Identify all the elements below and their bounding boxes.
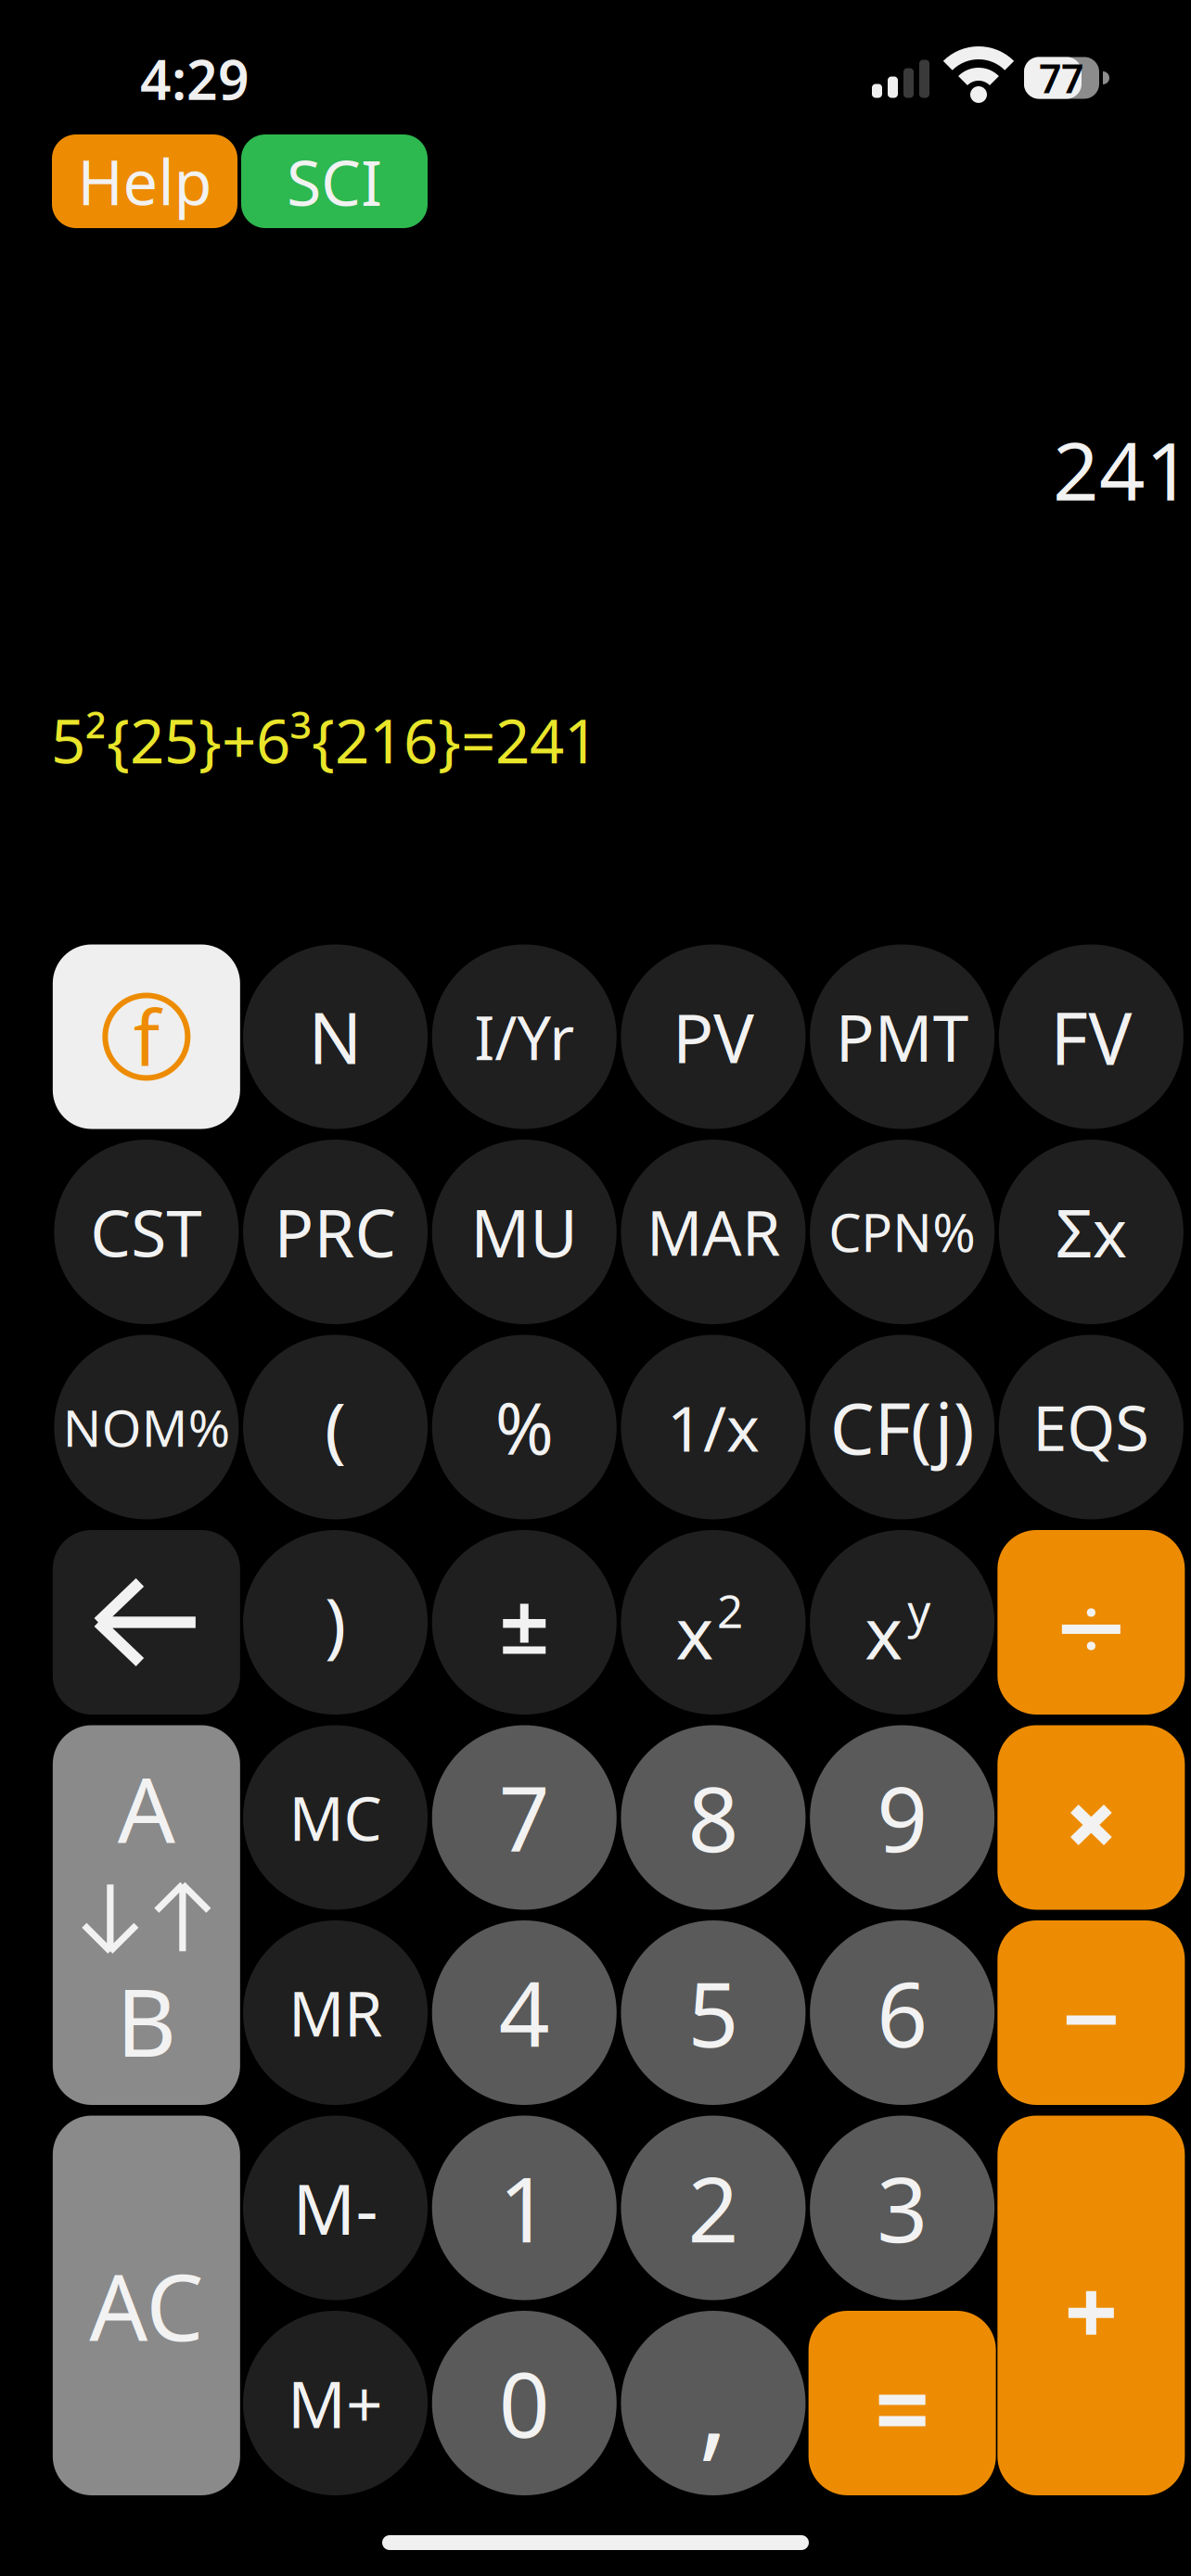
staticText: PV [672,992,754,1082]
button[interactable]: Σx [999,1140,1183,1324]
button[interactable]: M+ [243,2311,428,2495]
button[interactable] [432,1530,617,1715]
button[interactable]: MC [243,1725,428,1910]
staticText: A [118,1748,175,1867]
button[interactable]: CST [54,1140,239,1324]
staticText: 0 [499,2344,550,2462]
button[interactable]: Equals [808,2311,996,2495]
button[interactable]: , [621,2311,806,2495]
staticText: x [865,1584,903,1679]
button[interactable]: 1 [432,2116,617,2300]
staticText: MAR [646,1191,780,1273]
staticText: 4 [499,1954,550,2072]
staticText: B [116,1959,177,2082]
staticText: CF(j) [830,1380,975,1474]
button[interactable]: NOM% [54,1335,239,1519]
button[interactable]: 4 [432,1920,617,2105]
staticText: 4:29 [140,43,250,115]
staticText: f [133,986,159,1088]
staticText: Help [77,140,212,222]
staticText: AC [89,2245,203,2366]
button[interactable]: 6 [810,1920,994,2105]
staticText: 2 [688,2149,739,2267]
staticText: 1 [499,2149,550,2267]
staticText: I/Yr [474,996,574,1077]
button[interactable]: 8 [621,1725,806,1910]
staticText: FV [1050,988,1132,1085]
staticText: 5 [688,1954,739,2072]
staticText: 5²{25}+6³{216}=241 [51,700,598,780]
staticText: MC [289,1777,382,1858]
button[interactable]: EQS [999,1335,1183,1519]
staticText: % [495,1380,554,1474]
button[interactable]: 1/x [621,1335,806,1519]
button[interactable]: FV [999,944,1183,1129]
staticText: y [907,1580,930,1641]
button[interactable]: Help [52,134,237,228]
staticText: x [676,1584,714,1679]
button[interactable]: SCI [241,134,428,228]
button[interactable]: Multiply [997,1725,1185,1910]
button[interactable]: PRC [243,1140,428,1324]
staticText: N [308,990,362,1083]
staticText: ( [325,1380,346,1475]
button[interactable]: M- [243,2116,428,2300]
button[interactable]: Swap A and B [53,1725,240,2105]
staticText: 241 [1053,416,1191,523]
button[interactable]: PMT [810,944,994,1129]
button[interactable]: 5 [621,1920,806,2105]
staticText: 8 [688,1758,739,1877]
button[interactable]: ( [243,1335,428,1519]
button[interactable]: Backspace [53,1530,240,1715]
button[interactable]: 7 [432,1725,617,1910]
button[interactable]: CPN% [810,1140,994,1324]
button[interactable]: MAR [621,1140,806,1324]
staticText: 7 [499,1758,550,1877]
button[interactable]: CF(j) [810,1335,994,1519]
button[interactable]: MR [243,1920,428,2105]
staticText: CST [90,1189,202,1275]
button[interactable]: Functions [53,944,240,1129]
button[interactable]: % [432,1335,617,1519]
staticText: PRC [274,1188,397,1275]
button[interactable]: MU [432,1140,617,1324]
button[interactable]: 0 [432,2311,617,2495]
button[interactable]: PV [621,944,806,1129]
button[interactable]: Subtract [997,1920,1185,2105]
button[interactable]: Add [997,2116,1185,2495]
staticText: EQS [1033,1386,1150,1468]
staticText: 6 [877,1954,928,2072]
staticText: , [698,2329,728,2477]
staticText: SCI [287,139,382,223]
staticText: MR [288,1972,382,2054]
staticText: ) [325,1575,346,1670]
staticText: Σx [1055,1188,1127,1275]
staticText: 77 [1039,52,1083,104]
button[interactable]: N [243,944,428,1129]
staticText: MU [470,1188,578,1275]
staticText: M- [293,2162,378,2254]
staticText: M+ [288,2360,383,2446]
staticText: PMT [835,994,969,1079]
button[interactable]: x [621,1530,806,1715]
button[interactable]: ) [243,1530,428,1715]
button[interactable]: 2 [621,2116,806,2300]
button[interactable]: Divide [997,1530,1185,1715]
button[interactable]: I/Yr [432,944,617,1129]
staticText: NOM% [63,1393,230,1461]
staticText: 1/x [667,1385,760,1469]
staticText: 2 [717,1580,743,1641]
button[interactable]: 9 [810,1725,994,1910]
staticText: CPN% [828,1197,976,1266]
staticText: 3 [877,2149,928,2267]
button[interactable]: x [810,1530,994,1715]
button[interactable]: 3 [810,2116,994,2300]
button[interactable]: All clear [53,2116,240,2495]
staticText: 9 [877,1758,928,1877]
